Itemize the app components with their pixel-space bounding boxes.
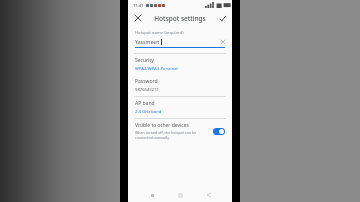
- staticText: Visible to other devices: [135, 122, 189, 129]
- button[interactable]: Password: [128, 75, 232, 96]
- staticText: AP band: [135, 100, 155, 107]
- button[interactable]: Home: [175, 190, 185, 200]
- staticText: WPA2/WPA3-Personal: [135, 66, 178, 72]
- staticText: 2.4 GHz band: [135, 109, 162, 115]
- button[interactable]: Close: [132, 12, 144, 24]
- button[interactable]: Recents: [147, 190, 157, 200]
- staticText: Hotspot name (required): [135, 30, 184, 36]
- button[interactable]: Security: [128, 54, 232, 75]
- staticText: When turned off, the hotspot can be conn…: [135, 130, 210, 140]
- button[interactable]: Hotspot name (required): [135, 30, 225, 48]
- button[interactable]: Back: [204, 190, 214, 200]
- staticText: 11:41: [133, 3, 144, 8]
- button[interactable]: Save: [216, 12, 228, 24]
- staticText: 9876543211: [135, 87, 159, 93]
- staticText: Security: [135, 57, 154, 64]
- button[interactable]: Visible to other devices: [128, 119, 232, 143]
- staticText: Hotspot settings: [154, 14, 206, 23]
- staticText: Yassmeen: [135, 38, 160, 45]
- button[interactable]: AP band: [128, 97, 232, 118]
- staticText: Password: [135, 78, 158, 85]
